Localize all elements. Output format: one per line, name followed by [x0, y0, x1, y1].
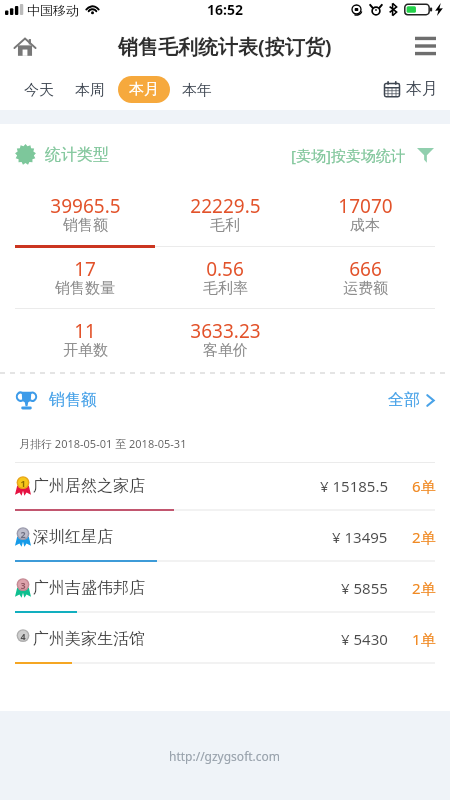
staticText: 666: [349, 256, 382, 282]
staticText: 17: [74, 256, 96, 282]
staticText: ¥ 13495: [332, 527, 388, 547]
staticText: 运费额: [343, 279, 388, 298]
staticText: 本月: [129, 80, 159, 99]
staticText: 2单: [412, 527, 436, 547]
staticText: 销售额: [49, 390, 97, 410]
button[interactable]: 4: [0, 616, 450, 667]
button[interactable]: 666: [295, 248, 435, 308]
button[interactable]: Home: [6, 27, 44, 65]
staticText: 本月: [406, 79, 438, 99]
button[interactable]: 17070: [295, 185, 435, 245]
staticText: 全部: [388, 390, 420, 410]
button[interactable]: 22229.5: [155, 185, 295, 245]
staticText: 6单: [412, 476, 436, 496]
button[interactable]: 本月: [118, 76, 170, 103]
staticText: [卖场]按卖场统计: [291, 145, 406, 165]
staticText: ¥ 15185.5: [320, 476, 388, 496]
staticText: http://gzygsoft.com: [169, 748, 281, 764]
staticText: 广州吉盛伟邦店: [33, 578, 145, 598]
staticText: 销售毛利统计表(按订货): [118, 33, 332, 60]
staticText: 1: [20, 477, 26, 489]
button[interactable]: 1: [0, 463, 450, 514]
staticText: 销售数量: [55, 279, 115, 298]
staticText: 本周: [75, 81, 105, 100]
staticText: 广州居然之家店: [33, 476, 145, 496]
staticText: 4: [20, 630, 26, 642]
staticText: ¥ 5430: [341, 629, 388, 649]
button[interactable]: 本月: [384, 79, 438, 99]
staticText: 11: [74, 318, 96, 344]
button[interactable]: Filter: [415, 145, 435, 165]
button[interactable]: 17: [15, 248, 155, 308]
staticText: 1单: [412, 629, 436, 649]
button[interactable]: 0.56: [155, 248, 295, 308]
staticText: 月排行 2018-05-01 至 2018-05-31: [19, 436, 187, 451]
button[interactable]: 今天: [18, 78, 60, 102]
staticText: 深圳红星店: [33, 527, 113, 547]
staticText: 39965.5: [50, 193, 121, 219]
staticText: 开单数: [63, 341, 108, 360]
staticText: 3633.23: [190, 318, 261, 344]
staticText: 广州美家生活馆: [33, 629, 145, 649]
button[interactable]: 11: [15, 309, 155, 372]
staticText: 客单价: [203, 341, 248, 360]
staticText: 成本: [350, 216, 380, 235]
staticText: 统计类型: [45, 145, 109, 165]
staticText: 16:52: [207, 0, 243, 19]
staticText: ¥ 5855: [341, 578, 388, 598]
button[interactable]: 2: [0, 514, 450, 565]
staticText: 2单: [412, 578, 436, 598]
staticText: 中国移动: [27, 2, 79, 18]
staticText: 3: [20, 579, 26, 591]
button[interactable]: 3633.23: [155, 309, 295, 372]
staticText: 毛利: [210, 216, 240, 235]
staticText: 2: [20, 528, 26, 540]
staticText: 销售额: [63, 216, 108, 235]
staticText: 0.56: [206, 256, 244, 282]
button[interactable]: 本周: [69, 78, 111, 102]
staticText: 毛利率: [203, 279, 248, 298]
staticText: 本年: [182, 81, 212, 100]
staticText: 22229.5: [190, 193, 261, 219]
button[interactable]: 3: [0, 565, 450, 616]
staticText: 今天: [24, 81, 54, 100]
staticText: 17070: [338, 193, 393, 219]
button[interactable]: Menu: [406, 27, 444, 65]
button[interactable]: 本年: [176, 78, 218, 102]
button[interactable]: 39965.5: [15, 185, 155, 245]
button[interactable]: 全部: [388, 390, 435, 410]
